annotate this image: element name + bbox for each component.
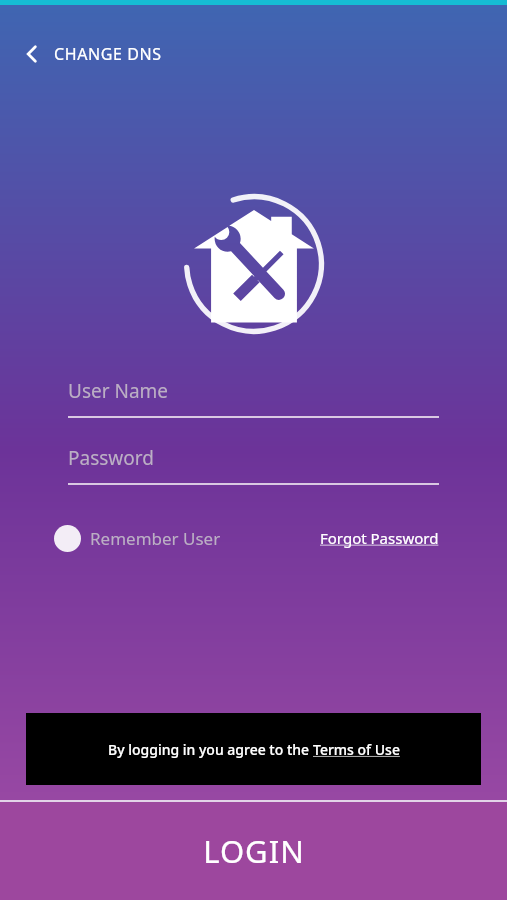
button[interactable]: LOGIN [0,802,507,900]
staticText: Password [68,445,154,471]
staticText: By logging in you agree to the [108,740,313,759]
button[interactable]: By logging in you agree to the [26,713,481,785]
button[interactable]: User Name [68,378,439,418]
staticText: Terms of Use [313,740,400,759]
staticText: Forgot Password [320,528,439,548]
other: Back [16,38,48,70]
button[interactable]: Remember User [54,525,221,552]
button[interactable]: Password [68,445,439,485]
staticText: CHANGE DNS [54,43,162,65]
staticText: User Name [68,378,169,404]
staticText: Remember User [90,527,221,550]
button[interactable]: Forgot Password [320,528,439,548]
staticText: LOGIN [203,830,305,872]
button[interactable]: Back [16,38,507,70]
